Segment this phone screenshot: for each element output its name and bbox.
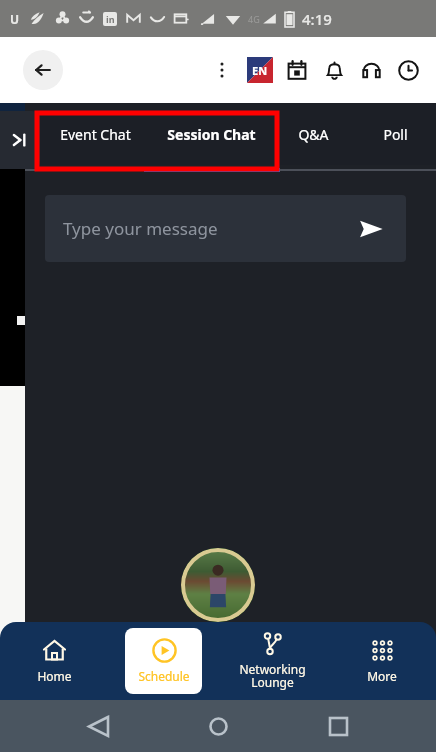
button[interactable]: Home bbox=[16, 628, 93, 694]
button[interactable]: Back bbox=[76, 704, 120, 748]
staticText: Home bbox=[37, 668, 72, 684]
button[interactable]: Language English bbox=[246, 56, 274, 84]
staticText: Q&A bbox=[298, 125, 329, 144]
button[interactable]: Type your message bbox=[45, 195, 406, 262]
button[interactable]: Poll bbox=[354, 103, 436, 165]
button[interactable]: Expand panel bbox=[0, 111, 40, 169]
staticText: Type your message bbox=[63, 217, 218, 240]
staticText: 4G bbox=[248, 13, 260, 25]
button[interactable]: Recents bbox=[316, 704, 360, 748]
button[interactable]: Home bbox=[196, 704, 240, 748]
staticText: Schedule bbox=[138, 668, 190, 684]
button[interactable]: Session Chat bbox=[151, 103, 272, 165]
button[interactable]: Notifications bbox=[320, 56, 348, 84]
button[interactable]: More bbox=[343, 628, 420, 694]
button[interactable]: Event Chat bbox=[40, 103, 151, 165]
staticText: U bbox=[10, 11, 20, 27]
staticText: 4:19 bbox=[302, 9, 332, 29]
button[interactable]: Back bbox=[23, 50, 63, 90]
button[interactable]: Support bbox=[357, 56, 385, 84]
staticText: Session Chat bbox=[167, 125, 256, 144]
staticText: More bbox=[367, 668, 397, 684]
button[interactable]: Calendar bbox=[283, 56, 311, 84]
button[interactable]: Profile bbox=[181, 548, 255, 622]
button[interactable]: More options bbox=[208, 56, 236, 84]
button[interactable]: Q&A bbox=[272, 103, 354, 165]
button[interactable]: Clock bbox=[394, 56, 422, 84]
staticText: EN bbox=[252, 63, 268, 78]
staticText: Event Chat bbox=[60, 125, 131, 144]
staticText: in bbox=[106, 13, 115, 25]
staticText: Poll bbox=[383, 125, 408, 144]
staticText: Networking Lounge bbox=[239, 661, 306, 691]
button[interactable]: Schedule bbox=[125, 628, 202, 694]
button[interactable]: Send bbox=[354, 212, 388, 246]
button[interactable]: Networking Lounge bbox=[234, 628, 311, 694]
